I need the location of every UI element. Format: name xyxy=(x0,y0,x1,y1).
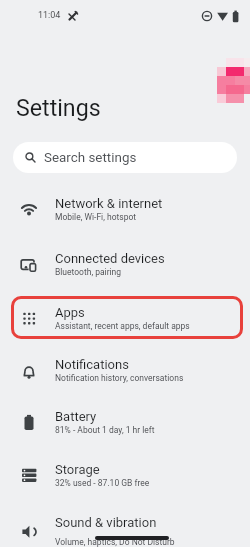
staticText: Notifications xyxy=(55,357,129,372)
staticText: Battery xyxy=(55,409,97,424)
button[interactable]: Search settings xyxy=(13,142,237,173)
staticText: 81% - About 1 day, 1 hr left xyxy=(55,425,155,435)
button[interactable]: Sound & vibration xyxy=(0,505,250,547)
staticText: Sound & vibration xyxy=(55,515,157,530)
staticText: Storage xyxy=(55,462,100,477)
button[interactable]: Storage xyxy=(0,452,250,505)
button[interactable]: Network & internet xyxy=(0,186,250,239)
staticText: Connected devices xyxy=(55,251,165,266)
staticText: Apps xyxy=(55,305,85,320)
staticText: Bluetooth, pairing xyxy=(55,267,122,277)
staticText: Notification history, conversations xyxy=(55,373,184,383)
staticText: Settings xyxy=(16,94,101,121)
staticText: Assistant, recent apps, default apps xyxy=(55,321,190,331)
button[interactable]: Battery xyxy=(0,399,250,452)
button[interactable]: Apps xyxy=(0,295,250,348)
button[interactable]: Connected devices xyxy=(0,241,250,294)
staticText: Search settings xyxy=(44,150,137,166)
staticText: 11:04 xyxy=(38,10,61,21)
staticText: 32% used - 87.10 GB free xyxy=(55,478,150,488)
button[interactable] xyxy=(217,58,250,103)
staticText: Mobile, Wi-Fi, hotspot xyxy=(55,212,137,222)
button[interactable]: Notifications xyxy=(0,347,250,400)
staticText: Network & internet xyxy=(55,196,163,211)
staticText: Volume, haptics, Do Not Disturb xyxy=(55,537,175,547)
